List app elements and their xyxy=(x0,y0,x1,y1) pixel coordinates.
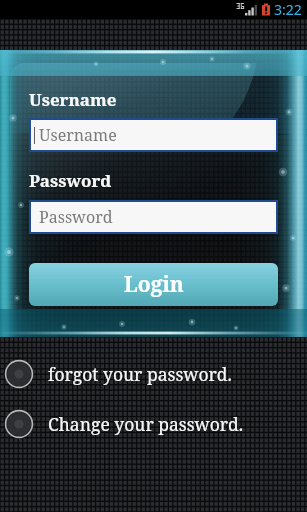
staticText: Change your password. xyxy=(48,412,244,436)
staticText: Username xyxy=(39,124,117,146)
staticText: Password xyxy=(39,206,113,228)
button[interactable]: Change your password. xyxy=(0,409,307,439)
staticText: Password xyxy=(29,169,112,192)
button[interactable]: forgot your password. xyxy=(0,359,307,389)
staticText: forgot your password. xyxy=(48,362,232,386)
staticText: 3:22 xyxy=(274,0,302,19)
button[interactable]: Login xyxy=(29,263,278,306)
staticText: Login xyxy=(124,270,184,299)
staticText: Username xyxy=(29,88,117,111)
button[interactable]: Password xyxy=(31,202,276,232)
button[interactable]: Username xyxy=(31,120,276,150)
